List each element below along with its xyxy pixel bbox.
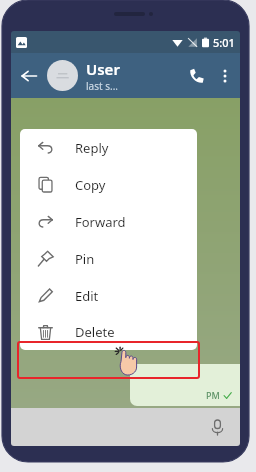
staticText: 5:01 (213, 35, 235, 50)
staticText: User (86, 59, 120, 79)
button[interactable]: More options (212, 53, 238, 98)
button[interactable]: Forward (20, 203, 197, 240)
button[interactable]: Record voice message (204, 414, 230, 440)
button[interactable]: Edit (20, 277, 197, 314)
staticText: Pin (75, 250, 95, 268)
button[interactable]: Profile photo (47, 60, 78, 91)
staticText: last s... (86, 79, 119, 93)
staticText: Forward (75, 213, 126, 231)
staticText: Reply (75, 139, 109, 157)
button[interactable]: Back (11, 53, 47, 98)
button[interactable]: Reply (20, 129, 197, 166)
staticText: PM (206, 389, 220, 401)
button[interactable]: Delete (20, 314, 197, 350)
button[interactable]: User (86, 59, 182, 93)
staticText: Delete (75, 323, 115, 341)
staticText: Edit (75, 287, 99, 305)
button[interactable]: Pin (20, 240, 197, 277)
button[interactable]: Copy (20, 166, 197, 203)
staticText: Copy (75, 176, 106, 194)
button[interactable]: Call (182, 53, 212, 98)
